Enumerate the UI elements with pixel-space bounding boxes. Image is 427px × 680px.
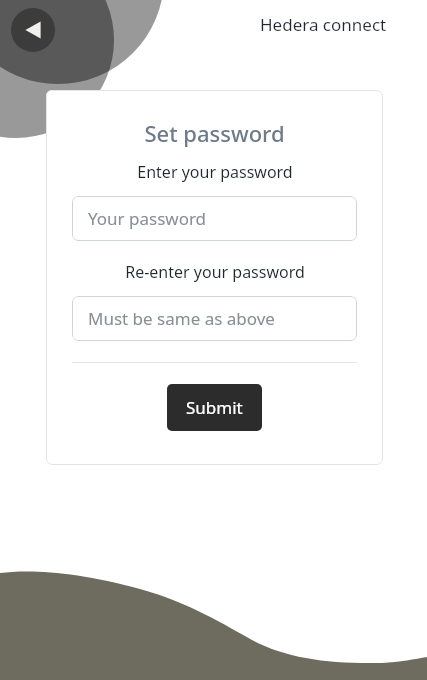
staticText: Your password <box>88 207 207 230</box>
button[interactable]: Back <box>11 8 55 52</box>
staticText: Enter your password <box>137 161 293 183</box>
button[interactable]: Must be same as above <box>72 296 357 341</box>
button[interactable]: Your password <box>72 196 357 241</box>
staticText: Submit <box>186 396 243 419</box>
staticText: Must be same as above <box>88 307 275 330</box>
button[interactable]: Submit <box>167 384 262 431</box>
staticText: Hedera connect <box>260 13 387 36</box>
staticText: Set password <box>144 118 285 148</box>
staticText: Re-enter your password <box>125 261 305 283</box>
